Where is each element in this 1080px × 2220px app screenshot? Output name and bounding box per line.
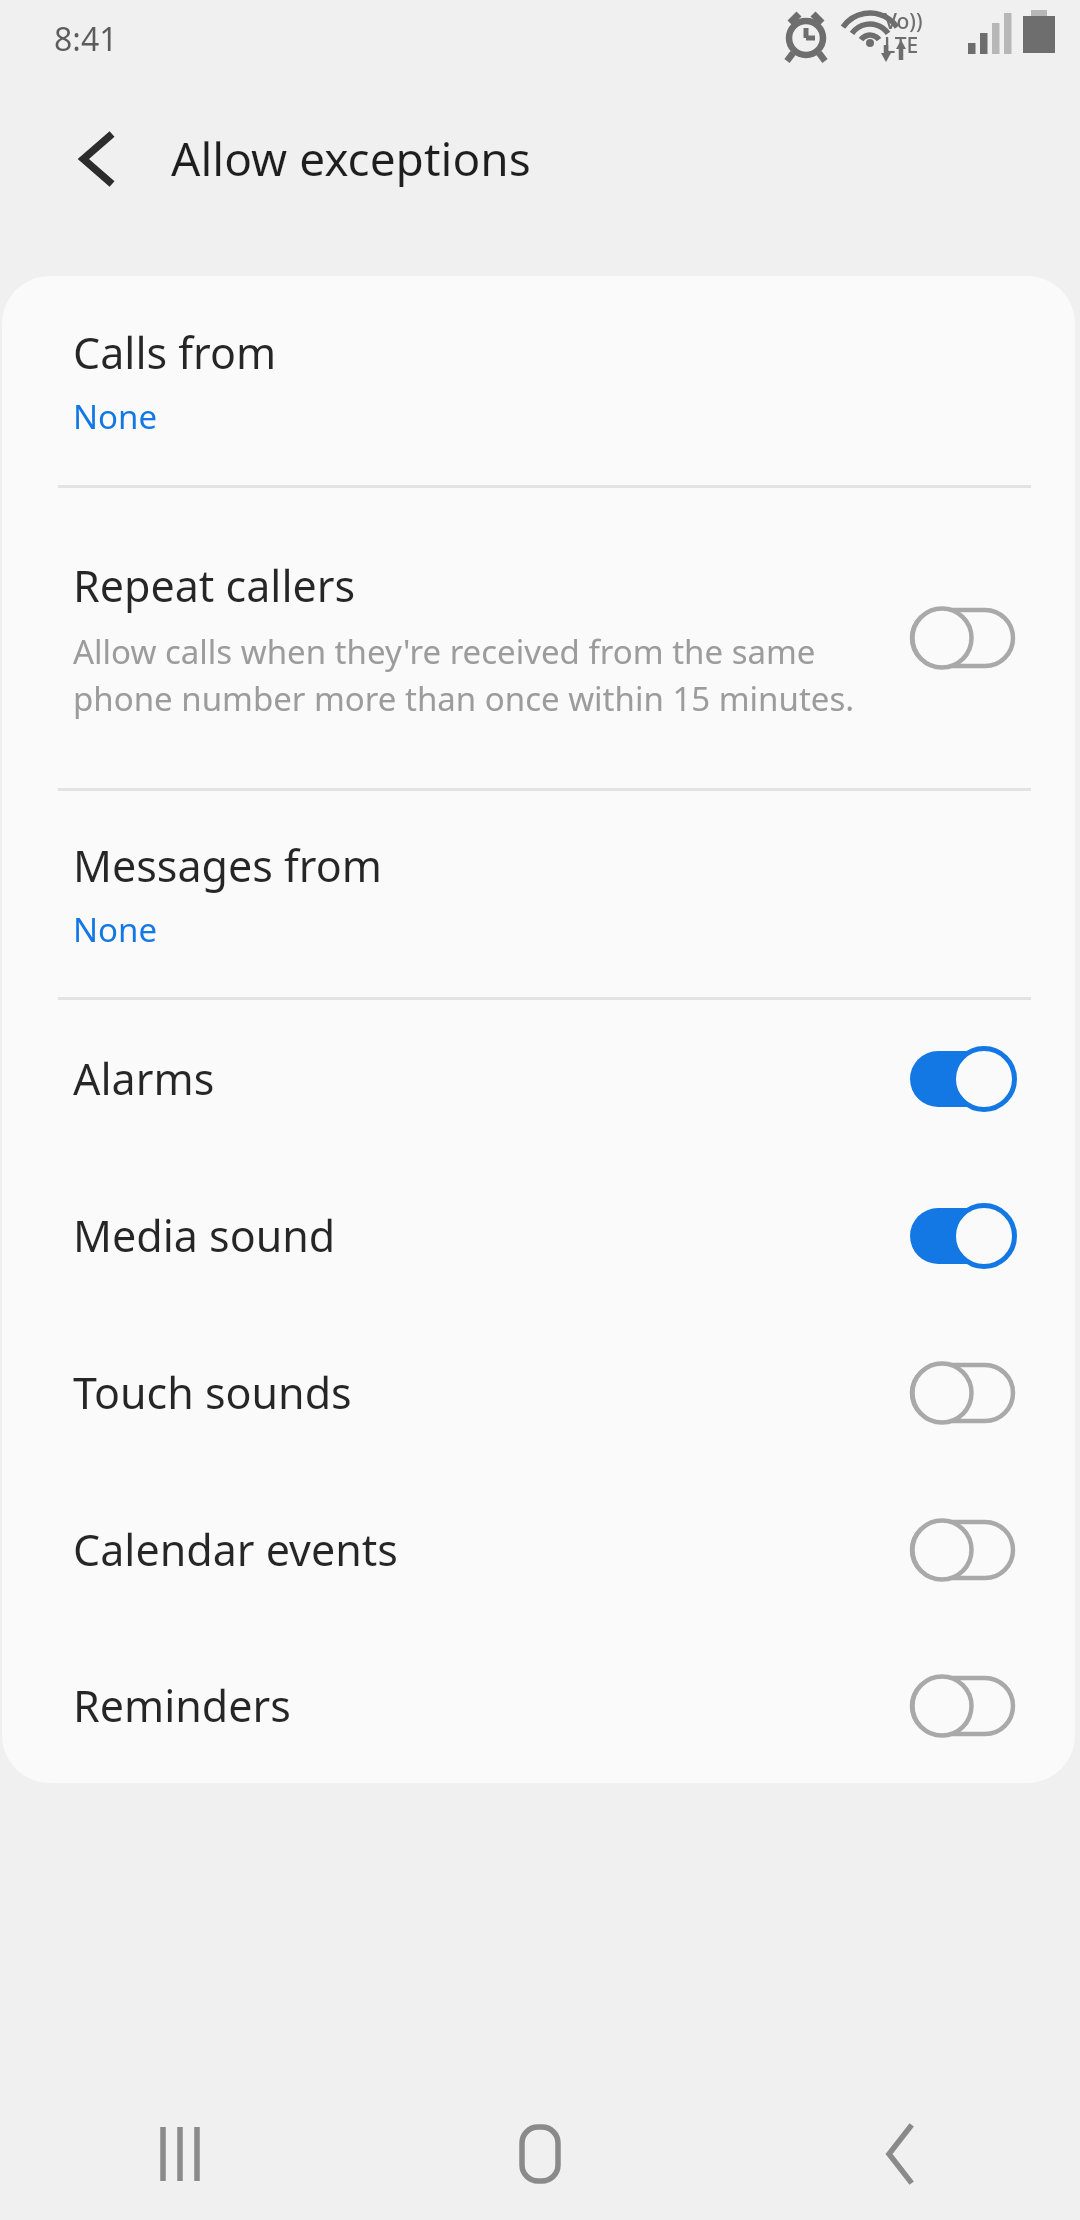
staticText: Messages from <box>73 836 382 895</box>
button[interactable]: Repeat callers <box>2 488 1075 788</box>
button[interactable]: Calls from <box>2 276 1075 485</box>
staticText: Allow exceptions <box>171 127 531 190</box>
staticText: Calls from <box>73 323 277 382</box>
button[interactable]: Calendar events <box>2 1471 1075 1628</box>
button[interactable]: On <box>909 1046 1017 1112</box>
button[interactable]: Recent apps <box>0 2088 360 2220</box>
button[interactable]: Off <box>909 1360 1017 1426</box>
button[interactable]: Navigate up <box>50 112 144 206</box>
button[interactable]: Alarms <box>2 1000 1075 1157</box>
button[interactable]: Off <box>909 1673 1017 1739</box>
button[interactable]: Messages from <box>2 791 1075 997</box>
staticText: Reminders <box>73 1676 909 1735</box>
button[interactable]: Touch sounds <box>2 1314 1075 1471</box>
button[interactable]: Reminders <box>2 1628 1075 1783</box>
staticText: LTE <box>884 31 919 60</box>
staticText: Allow calls when they're received from t… <box>73 629 891 721</box>
button[interactable]: Home <box>360 2088 720 2220</box>
button[interactable]: Back <box>720 2088 1080 2220</box>
staticText: Alarms <box>73 1049 909 1108</box>
staticText: None <box>73 907 158 952</box>
button[interactable]: Off <box>909 605 1017 671</box>
staticText: Media sound <box>73 1206 909 1265</box>
button[interactable]: Media sound <box>2 1157 1075 1314</box>
staticText: Repeat callers <box>73 556 356 615</box>
staticText: None <box>73 394 158 439</box>
staticText: Touch sounds <box>73 1363 909 1422</box>
button[interactable]: Off <box>909 1517 1017 1583</box>
staticText: Vo)) <box>884 7 923 36</box>
staticText: 8:41 <box>54 17 118 61</box>
staticText: Calendar events <box>73 1520 909 1579</box>
button[interactable]: On <box>909 1203 1017 1269</box>
